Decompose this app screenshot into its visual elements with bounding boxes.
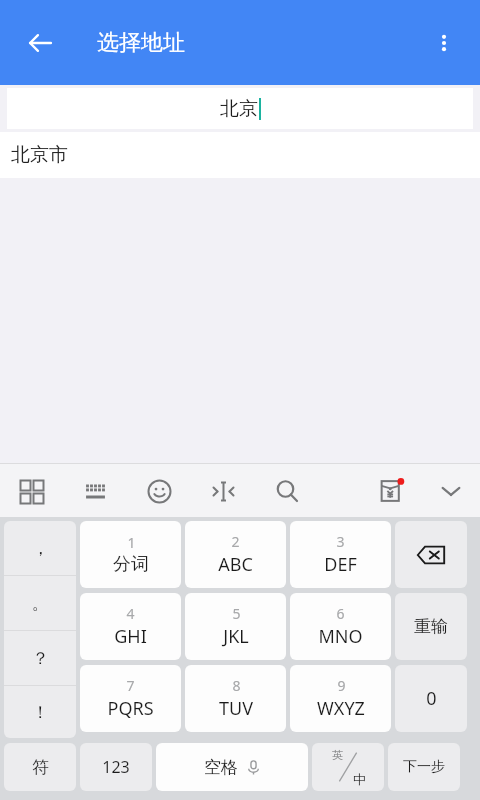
button[interactable]: Keyboard (74, 470, 116, 512)
staticText: ， (32, 538, 49, 559)
button[interactable]: ， (4, 521, 76, 575)
staticText: TUV (219, 696, 253, 721)
button[interactable]: 下一步 (388, 743, 460, 791)
button[interactable]: 北京市 (0, 132, 480, 178)
button[interactable]: Keyboard layouts (10, 470, 52, 512)
staticText: 空格 (204, 757, 238, 778)
staticText: 北京 (220, 97, 258, 121)
staticText: 符 (32, 757, 49, 778)
button[interactable]: 符 (4, 743, 76, 791)
staticText: 重输 (414, 616, 448, 637)
staticText: ？ (32, 648, 49, 669)
staticText: 。 (32, 593, 49, 614)
staticText: ABC (218, 552, 253, 577)
staticText: PQRS (107, 696, 154, 721)
button[interactable]: 1 (80, 521, 181, 588)
staticText: 3 (336, 532, 345, 551)
button[interactable]: 空格 (156, 743, 308, 791)
button[interactable]: More options (422, 21, 466, 65)
button[interactable]: 3 (290, 521, 391, 588)
staticText: 7 (126, 676, 135, 695)
button[interactable]: 7 (80, 665, 181, 732)
button[interactable]: Hide keyboard (428, 468, 474, 514)
button[interactable]: 重输 (395, 593, 467, 660)
button[interactable]: 6 (290, 593, 391, 660)
button[interactable]: Backspace (395, 521, 467, 588)
staticText: MNO (318, 624, 363, 649)
staticText: 8 (232, 676, 241, 695)
button[interactable]: 0 (395, 665, 467, 732)
button[interactable]: 4 (80, 593, 181, 660)
button[interactable]: 8 (185, 665, 286, 732)
button[interactable]: Move cursor (202, 470, 244, 512)
staticText: 中 (353, 771, 366, 787)
staticText: 9 (337, 676, 346, 695)
staticText: JKL (223, 624, 249, 649)
staticText: 5 (232, 604, 241, 623)
staticText: 0 (426, 686, 437, 711)
staticText: 下一步 (403, 758, 445, 776)
button[interactable]: 。 (4, 576, 76, 630)
button[interactable]: Switch language (312, 743, 384, 791)
button[interactable]: 5 (185, 593, 286, 660)
button[interactable]: 123 (80, 743, 152, 791)
staticText: 英 (332, 748, 343, 762)
staticText: 1 (127, 533, 136, 552)
staticText: GHI (114, 624, 147, 649)
staticText: 分词 (113, 553, 149, 576)
button[interactable]: ？ (4, 631, 76, 685)
staticText: ！ (32, 702, 49, 723)
button[interactable]: 9 (290, 665, 391, 732)
button[interactable]: Red packet (368, 468, 414, 514)
staticText: DEF (324, 552, 357, 577)
button[interactable]: 2 (185, 521, 286, 588)
staticText: 选择地址 (97, 29, 185, 57)
button[interactable]: Emoji (138, 470, 180, 512)
staticText: 6 (336, 604, 345, 623)
staticText: 123 (102, 756, 130, 778)
button[interactable]: 北京 (7, 88, 473, 129)
staticText: 北京市 (11, 143, 68, 167)
button[interactable]: Back (16, 19, 64, 67)
staticText: 4 (126, 604, 135, 623)
staticText: WXYZ (317, 696, 365, 721)
button[interactable]: Search (266, 470, 308, 512)
button[interactable]: ！ (4, 686, 76, 738)
staticText: 2 (231, 532, 240, 551)
